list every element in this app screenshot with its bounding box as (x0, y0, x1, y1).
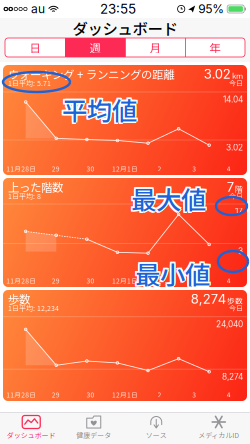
staticText: 最大値 (131, 182, 206, 218)
staticText: 24,040 (216, 319, 243, 329)
staticText: 2 (158, 276, 162, 285)
staticText: ダッシュボード (72, 17, 177, 39)
staticText: ソース (146, 430, 167, 440)
staticText: 12月1日 (112, 390, 138, 399)
staticText: 3 (192, 276, 196, 285)
staticText: 今日 (229, 78, 243, 88)
staticText: 29 (52, 164, 60, 173)
button[interactable]: 日 (5, 38, 65, 57)
staticText: 29 (52, 276, 60, 285)
staticText: au (31, 2, 45, 16)
staticText: 最大値 (129, 182, 204, 218)
staticText: 最大値 (131, 180, 206, 217)
staticText: 最小値 (135, 255, 210, 292)
staticText: 今日 (229, 303, 243, 313)
staticText: 12月1日 (112, 164, 138, 173)
staticText: 日 (29, 39, 40, 56)
staticText: 最大値 (131, 178, 206, 215)
staticText: 最大値 (133, 178, 208, 215)
staticText: 歩数 (227, 295, 243, 306)
staticText: 1日平均: 5.71 (8, 78, 51, 88)
staticText: メディカルID (198, 430, 239, 440)
staticText: 11月28日 (6, 390, 36, 399)
staticText: 29 (52, 390, 60, 399)
staticText: 歩数 (8, 291, 30, 307)
staticText: 95% (198, 2, 224, 16)
staticText: 7 (227, 179, 234, 195)
staticText: 最小値 (135, 257, 210, 293)
staticText: 8,274 (191, 291, 226, 307)
staticText: 最小値 (135, 255, 210, 292)
staticText: 30 (86, 164, 94, 173)
staticText: 11月28日 (6, 164, 36, 173)
staticText: 最小値 (135, 253, 210, 290)
staticText: 最小値 (137, 255, 212, 292)
staticText: 12月1日 (112, 276, 138, 285)
staticText: 8,274 (222, 372, 243, 382)
button[interactable]: 週 (65, 38, 125, 57)
staticText: 2 (158, 164, 162, 173)
staticText: 最小値 (137, 253, 212, 290)
staticText: 2 (158, 390, 162, 399)
button[interactable]: ソース (125, 415, 187, 440)
button[interactable]: メディカルID (187, 415, 250, 440)
staticText: 30 (86, 390, 94, 399)
staticText: 平均値 (64, 89, 139, 126)
staticText: 週 (89, 39, 100, 56)
staticText: 3 (192, 164, 196, 173)
staticText: 月 (149, 39, 160, 56)
staticText: 4 (227, 276, 231, 285)
staticText: 最小値 (133, 257, 208, 293)
staticText: 最大値 (129, 178, 204, 215)
staticText: 3 (238, 246, 243, 256)
staticText: 23:55 (100, 1, 136, 17)
staticText: 平均値 (62, 89, 137, 126)
staticText: 平均値 (62, 91, 137, 128)
button[interactable]: ダッシュボード (0, 415, 62, 440)
staticText: 年 (209, 39, 220, 56)
staticText: 最小値 (133, 255, 208, 292)
staticText: 3.02 (204, 66, 231, 82)
staticText: 最大値 (133, 180, 208, 217)
staticText: 最大値 (131, 180, 206, 217)
staticText: 11月28日 (6, 276, 36, 285)
staticText: 平均値 (62, 93, 137, 129)
button[interactable]: 月 (125, 38, 185, 57)
staticText: 平均値 (60, 89, 135, 126)
staticText: 最小値 (133, 253, 208, 290)
staticText: 17 (235, 206, 243, 216)
staticText: ダッシュボード (7, 430, 56, 440)
staticText: ウォーキング + ランニングの距離 (8, 66, 174, 82)
staticText: 平均値 (64, 91, 139, 128)
staticText: 階 (235, 183, 243, 194)
staticText: 14.04 (223, 94, 243, 104)
staticText: 3.02 (226, 142, 243, 152)
staticText: 1日平均: 12,234 (8, 303, 59, 313)
staticText: 平均値 (62, 91, 137, 128)
staticText: 4 (227, 164, 231, 173)
button[interactable]: 年 (185, 38, 245, 57)
staticText: km (232, 70, 243, 81)
staticText: 1日平均: 8 (8, 191, 41, 201)
staticText: 平均値 (60, 91, 135, 128)
staticText: 3 (192, 390, 196, 399)
staticText: 健康データ (76, 430, 111, 440)
staticText: 30 (86, 276, 94, 285)
staticText: 最大値 (129, 180, 204, 217)
staticText: 上った階数 (8, 179, 63, 195)
button[interactable]: 健康データ (62, 415, 125, 440)
staticText: 平均値 (60, 93, 135, 129)
staticText: 4 (227, 390, 231, 399)
staticText: 今日 (229, 191, 243, 201)
